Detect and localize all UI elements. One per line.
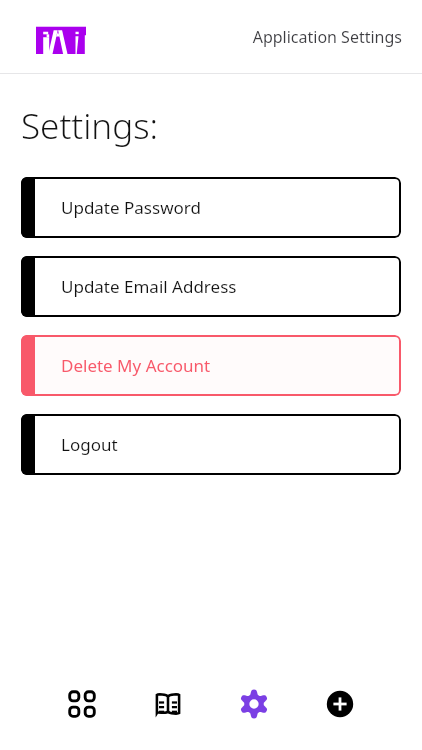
button[interactable]: Settings bbox=[230, 680, 278, 728]
staticText: Update Email Address bbox=[61, 275, 237, 298]
staticText: Update Password bbox=[61, 196, 201, 219]
staticText: Application Settings bbox=[252, 26, 402, 48]
staticText: Delete My Account bbox=[61, 354, 211, 377]
button[interactable]: Library bbox=[144, 680, 192, 728]
button[interactable]: Update Password bbox=[21, 177, 401, 238]
button[interactable]: Dashboard bbox=[58, 680, 106, 728]
staticText: Settings: bbox=[21, 102, 159, 150]
button[interactable]: Logout bbox=[21, 414, 401, 475]
button[interactable]: Update Email Address bbox=[21, 256, 401, 317]
button[interactable]: Delete My Account bbox=[21, 335, 401, 396]
other: App logo bbox=[36, 21, 86, 54]
button[interactable]: Add bbox=[316, 680, 364, 728]
staticText: Logout bbox=[61, 433, 118, 456]
